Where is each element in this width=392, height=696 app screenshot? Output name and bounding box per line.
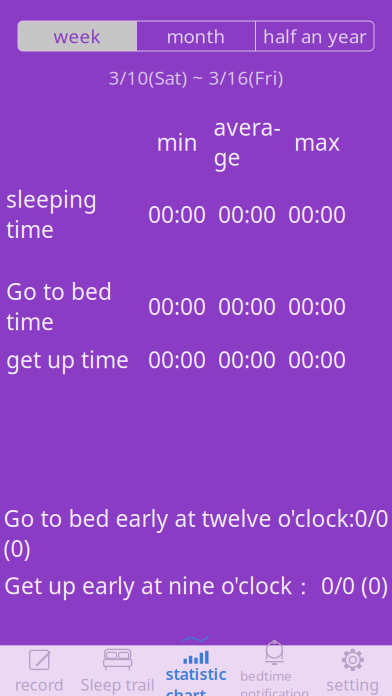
button[interactable]: half an year — [256, 21, 374, 51]
staticText: Sleep trail — [81, 674, 155, 695]
button[interactable]: Sleep trail — [78, 644, 157, 696]
staticText: record — [15, 674, 64, 695]
staticText: 00:00 — [288, 199, 346, 229]
staticText: bedtime notification — [240, 667, 309, 696]
button[interactable]: record — [0, 644, 78, 696]
staticText: 3/10(Sat) ~ 3/16(Fri) — [108, 65, 283, 90]
staticText: month — [166, 24, 225, 48]
staticText: week — [53, 24, 100, 48]
staticText: 00:00 — [148, 344, 206, 374]
staticText: sleeping time — [6, 184, 97, 244]
staticText: setting — [326, 674, 379, 695]
button[interactable]: statistic chart — [157, 633, 235, 696]
staticText: min — [156, 127, 197, 157]
button[interactable]: week — [18, 21, 136, 51]
staticText: half an year — [263, 24, 367, 48]
staticText: 00:00 — [288, 344, 346, 374]
staticText: 00:00 — [288, 291, 346, 321]
staticText: 00:00 — [218, 199, 276, 229]
staticText: average — [213, 112, 280, 172]
button[interactable]: setting — [314, 644, 392, 696]
staticText: 00:00 — [148, 291, 206, 321]
staticText: 00:00 — [148, 199, 206, 229]
staticText: 00:00 — [218, 291, 276, 321]
button[interactable]: month — [137, 21, 255, 51]
staticText: Get up early at nine o'clock： 0/0 (0) — [4, 570, 388, 600]
staticText: statistic chart — [165, 663, 226, 696]
staticText: max — [294, 127, 340, 157]
staticText: Go to bed time — [6, 276, 112, 336]
staticText: Go to bed early at twelve o'clock:0/0 (0… — [3, 503, 388, 563]
staticText: get up time — [6, 344, 129, 374]
staticText: 00:00 — [218, 344, 276, 374]
button[interactable]: bedtime notification — [235, 637, 314, 696]
